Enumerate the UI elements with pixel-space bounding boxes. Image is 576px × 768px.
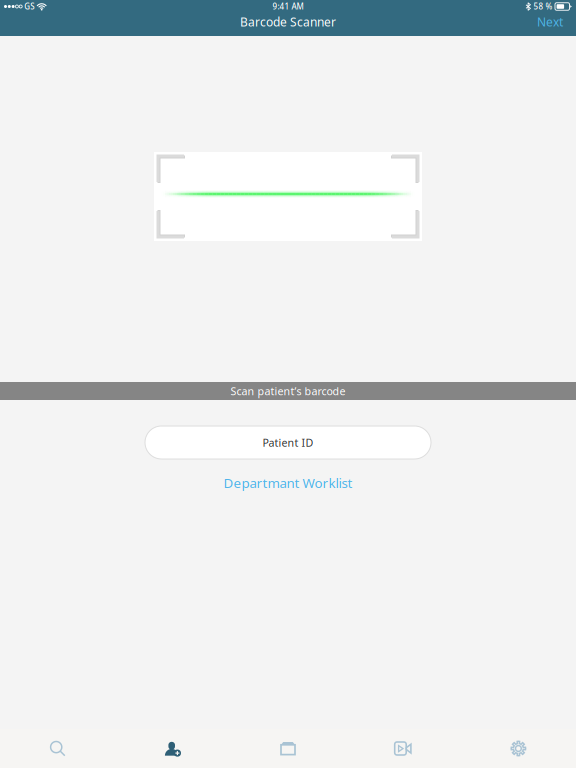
staticText: GS bbox=[24, 1, 34, 12]
staticText: 9:41 AM bbox=[272, 1, 303, 12]
staticText: 58 % bbox=[533, 1, 552, 12]
button[interactable]: Patient ID bbox=[145, 426, 431, 459]
button[interactable]: Departmant Worklist bbox=[215, 471, 360, 495]
staticText: Next bbox=[537, 14, 563, 30]
button[interactable]: Worklist bbox=[230, 729, 346, 768]
button[interactable]: Settings bbox=[461, 729, 576, 768]
staticText: Departmant Worklist bbox=[223, 474, 352, 492]
staticText: Scan patient’s barcode bbox=[230, 384, 345, 398]
button[interactable]: Search bbox=[0, 729, 115, 768]
button[interactable]: Add patient bbox=[115, 729, 230, 768]
button[interactable]: Video bbox=[346, 729, 461, 768]
staticText: Patient ID bbox=[262, 435, 313, 450]
staticText: Barcode Scanner bbox=[240, 14, 336, 30]
button[interactable]: Next bbox=[524, 12, 576, 32]
